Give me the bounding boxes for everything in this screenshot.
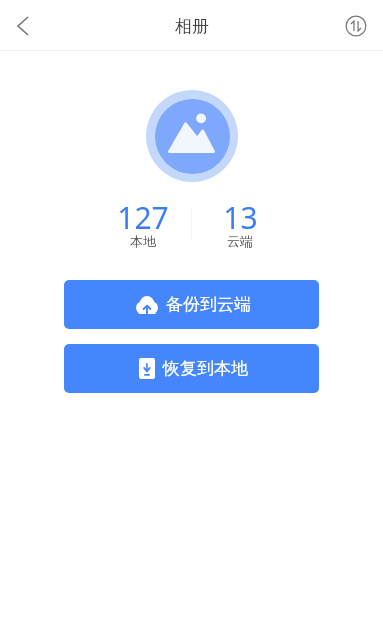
staticText: 13 xyxy=(223,197,258,230)
button[interactable]: 备份到云端 xyxy=(64,280,319,329)
button[interactable]: 恢复到本地 xyxy=(64,344,319,393)
staticText: 备份到云端 xyxy=(166,294,251,315)
staticText: 本地 xyxy=(130,233,156,249)
button[interactable]: Sync xyxy=(333,2,379,48)
staticText: 恢复到本地 xyxy=(163,358,248,379)
staticText: 127 xyxy=(117,197,169,230)
staticText: 相册 xyxy=(175,16,209,37)
staticText: 云端 xyxy=(227,233,253,249)
button[interactable]: Back xyxy=(0,2,46,48)
